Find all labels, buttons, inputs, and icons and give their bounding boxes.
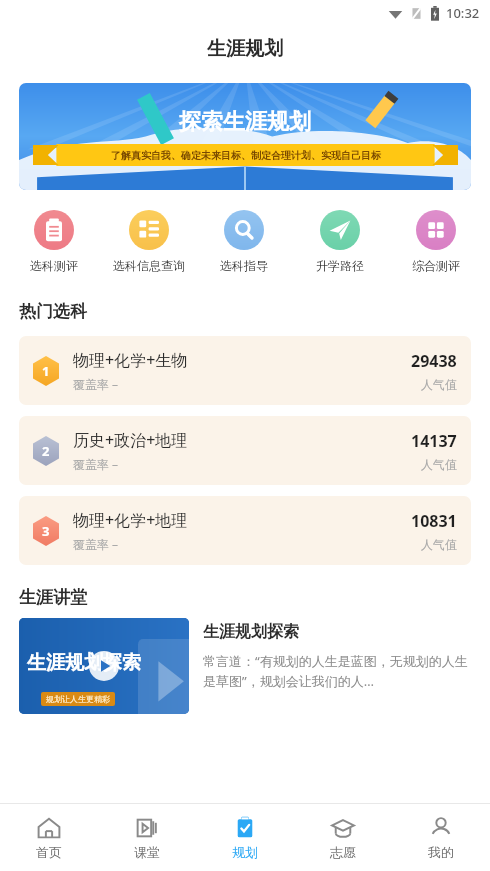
staticText: 综合测评: [412, 258, 460, 273]
staticText: 志愿: [330, 844, 356, 860]
other: 志愿: [330, 815, 356, 841]
other: 课堂: [134, 815, 160, 841]
button[interactable]: 升学路径: [292, 208, 388, 275]
button[interactable]: 2: [19, 416, 471, 485]
staticText: 1: [42, 362, 50, 380]
button[interactable]: 1: [19, 336, 471, 405]
button[interactable]: 选科测评: [6, 208, 101, 275]
staticText: 选科信息查询: [113, 258, 185, 273]
staticText: 选科测评: [30, 258, 78, 273]
staticText: 常言道：“有规划的人生是蓝图，无规划的人生是草图”，规划会让我们的人…: [203, 652, 471, 690]
staticText: 人气值: [421, 377, 457, 392]
staticText: 生涯讲堂: [19, 587, 87, 608]
staticText: 了解真实自我、确定未来目标、制定合理计划、实现自己目标: [111, 149, 381, 162]
button[interactable]: 选科信息查询: [101, 208, 196, 275]
staticText: 人气值: [421, 457, 457, 472]
button[interactable]: 探索生涯规划: [19, 83, 471, 190]
button[interactable]: 志愿: [294, 811, 392, 864]
button[interactable]: 课堂: [98, 811, 196, 864]
staticText: 规划让人生更精彩: [46, 694, 110, 704]
staticText: 生涯规划: [207, 37, 283, 61]
staticText: 29438: [411, 350, 457, 372]
staticText: 物理+化学+生物: [73, 349, 188, 371]
staticText: 我的: [428, 844, 454, 860]
staticText: 生涯规划探索: [203, 622, 299, 642]
button[interactable]: 选科指导: [196, 208, 292, 275]
button[interactable]: 3: [19, 496, 471, 565]
button[interactable]: 生涯规划探索: [19, 618, 471, 714]
other: 我的: [428, 815, 454, 841]
staticText: 10:32: [446, 4, 480, 22]
staticText: 课堂: [134, 844, 160, 860]
button[interactable]: 我的: [392, 811, 490, 864]
staticText: 升学路径: [316, 258, 364, 273]
other: 规划: [232, 815, 258, 841]
button[interactable]: 规划: [196, 811, 294, 864]
other: 首页: [36, 815, 62, 841]
staticText: 10831: [411, 510, 457, 532]
staticText: 覆盖率 –: [73, 456, 119, 472]
staticText: 生涯规划探索: [27, 651, 141, 675]
button[interactable]: 首页: [0, 811, 98, 864]
button[interactable]: 综合测评: [388, 208, 484, 275]
staticText: 覆盖率 –: [73, 376, 119, 392]
staticText: 规划: [232, 844, 258, 860]
staticText: 人气值: [421, 537, 457, 552]
staticText: 选科指导: [220, 258, 268, 273]
staticText: 探索生涯规划: [179, 108, 311, 136]
staticText: 14137: [411, 430, 457, 452]
staticText: 历史+政治+地理: [73, 429, 188, 451]
staticText: 首页: [36, 844, 62, 860]
staticText: 覆盖率 –: [73, 536, 119, 552]
staticText: 2: [42, 442, 50, 460]
staticText: 物理+化学+地理: [73, 509, 188, 531]
staticText: 热门选科: [19, 301, 87, 322]
staticText: 3: [42, 522, 50, 540]
